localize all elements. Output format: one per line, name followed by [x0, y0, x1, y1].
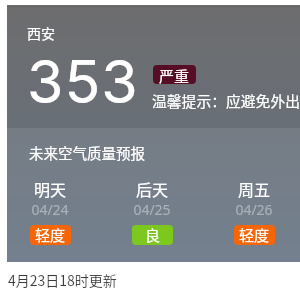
button[interactable]: 轻度: [234, 225, 275, 245]
staticText: 04/25: [101, 200, 203, 219]
staticText: 4月23日18时更新: [8, 270, 117, 290]
button[interactable]: 温馨提示：应避免外出: [152, 90, 300, 111]
staticText: 后天: [101, 177, 203, 200]
button[interactable]: 西安: [7, 5, 300, 262]
staticText: 周五: [203, 177, 300, 200]
button[interactable]: 周五: [203, 171, 300, 245]
button[interactable]: 明天: [0, 171, 101, 245]
staticText: 353: [27, 46, 139, 117]
button[interactable]: 良: [132, 225, 173, 245]
staticText: 04/26: [203, 200, 300, 219]
staticText: 严重: [159, 65, 190, 84]
staticText: 西安: [27, 23, 55, 43]
staticText: 轻度: [239, 225, 270, 244]
staticText: 04/24: [0, 200, 101, 219]
button[interactable]: 严重: [153, 65, 196, 84]
staticText: 未来空气质量预报: [29, 142, 145, 163]
staticText: 轻度: [35, 225, 66, 244]
button[interactable]: 后天: [101, 171, 203, 245]
staticText: 明天: [0, 177, 101, 200]
staticText: 良: [145, 225, 161, 244]
button[interactable]: 轻度: [30, 225, 71, 245]
